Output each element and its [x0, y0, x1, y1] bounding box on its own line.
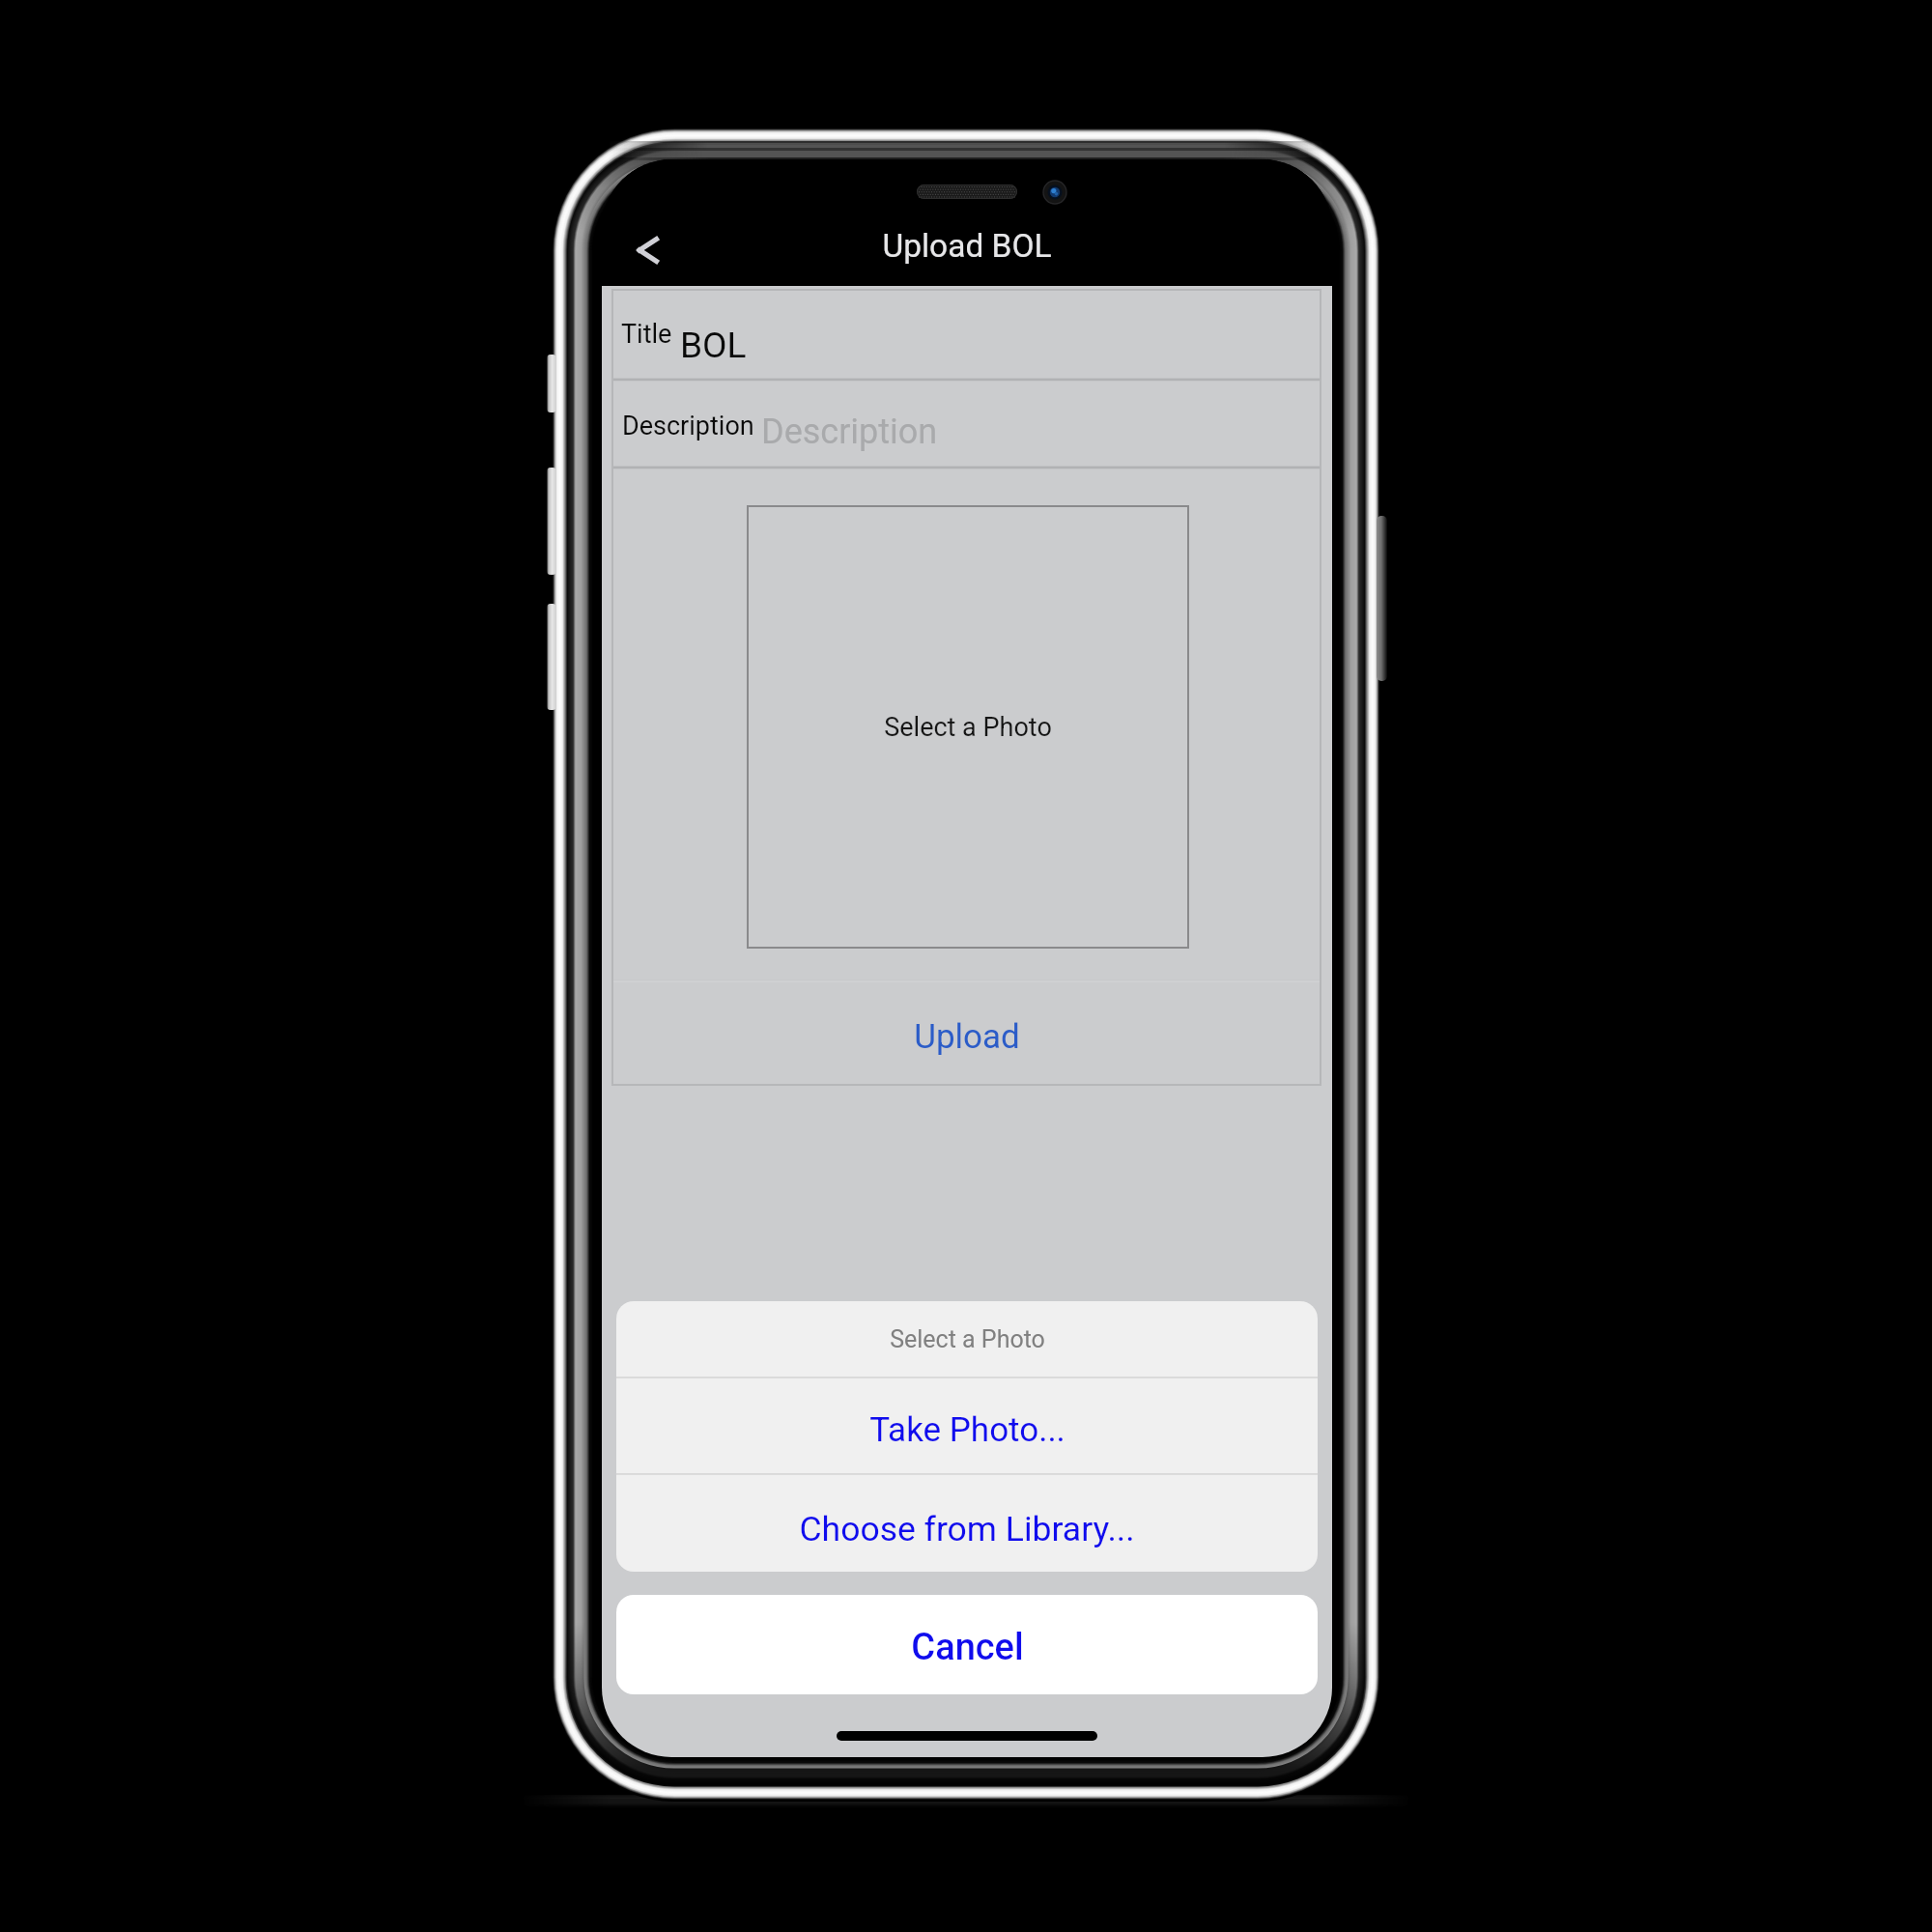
staticText: Take Photo...: [869, 1410, 1065, 1450]
staticText: Select a Photo: [890, 1325, 1045, 1353]
staticText: Title: [621, 319, 672, 350]
staticText: Description: [622, 411, 754, 441]
button[interactable]: Description: [611, 382, 1321, 466]
staticText: Cancel: [911, 1626, 1024, 1669]
staticText: Upload: [914, 1017, 1020, 1057]
button[interactable]: Title: [611, 289, 1321, 378]
staticText: Description: [761, 412, 938, 452]
button[interactable]: Choose from Library...: [616, 1475, 1318, 1572]
staticText: Choose from Library...: [799, 1509, 1135, 1549]
staticText: Upload BOL: [882, 227, 1052, 265]
button[interactable]: Cancel: [616, 1595, 1318, 1694]
button[interactable]: Upload: [611, 982, 1321, 1086]
button[interactable]: Select a Photo: [748, 506, 1188, 948]
staticText: BOL: [680, 325, 747, 366]
button[interactable]: Back: [611, 216, 678, 290]
staticText: Select a Photo: [884, 712, 1052, 743]
button[interactable]: Take Photo...: [616, 1378, 1318, 1473]
